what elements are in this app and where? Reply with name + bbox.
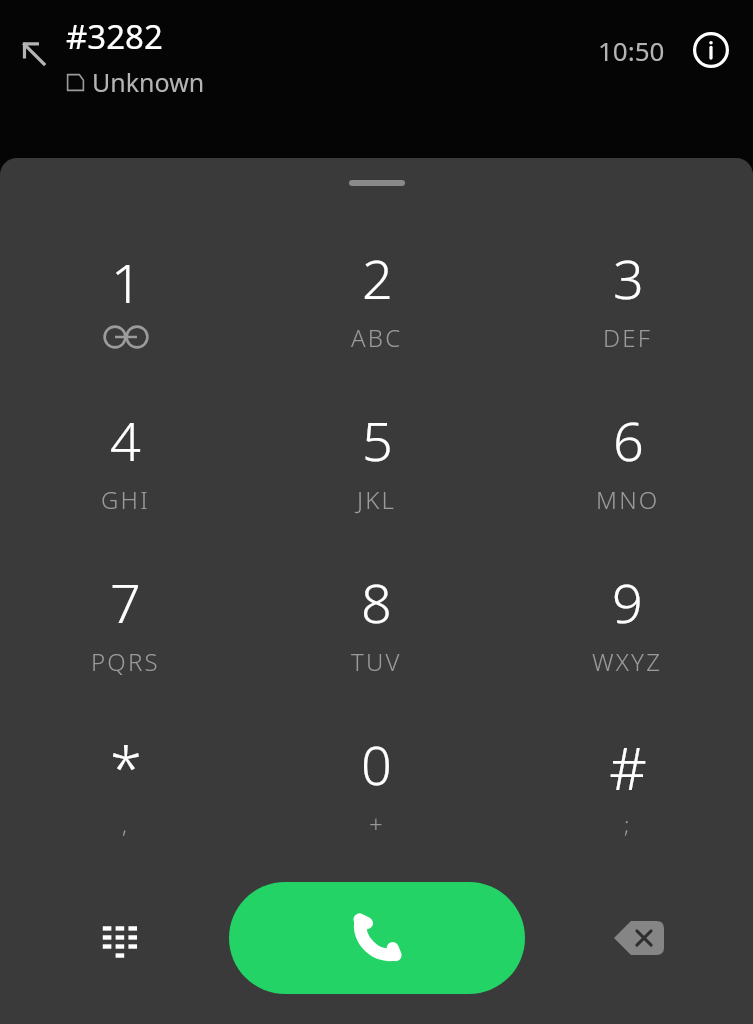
staticText: # <box>609 728 647 807</box>
staticText: JKL <box>357 483 397 516</box>
button[interactable]: Backspace <box>603 902 675 974</box>
button[interactable]: 3 <box>502 216 753 378</box>
button[interactable]: 6 <box>502 378 753 540</box>
staticText: DEF <box>603 321 653 354</box>
staticText: 6 <box>613 403 644 477</box>
button[interactable]: 8 <box>251 540 502 702</box>
staticText: 5 <box>362 403 393 477</box>
button[interactable]: Call details <box>689 28 733 72</box>
staticText: Unknown <box>92 65 205 99</box>
staticText: * <box>110 728 142 807</box>
button[interactable]: 2 <box>251 216 502 378</box>
staticText: , <box>122 809 130 839</box>
staticText: 4 <box>110 403 141 477</box>
staticText: TUV <box>351 645 402 678</box>
staticText: 1 <box>111 245 142 319</box>
button[interactable]: Outgoing call <box>10 30 58 78</box>
staticText: PQRS <box>91 645 160 678</box>
staticText: GHI <box>101 483 150 516</box>
staticText: ; <box>624 809 632 839</box>
button[interactable]: 4 <box>0 378 251 540</box>
button[interactable]: Call <box>229 882 525 994</box>
staticText: WXYZ <box>592 645 663 678</box>
staticText: MNO <box>596 483 660 516</box>
staticText: 9 <box>612 565 643 639</box>
staticText: 0 <box>361 727 392 801</box>
staticText: 10:50 <box>598 33 665 68</box>
button[interactable]: 5 <box>251 378 502 540</box>
staticText: #3282 <box>66 14 163 59</box>
staticText: 2 <box>362 241 393 315</box>
staticText: 7 <box>110 565 141 639</box>
staticText: ABC <box>351 321 403 354</box>
button[interactable]: 1 <box>0 216 251 378</box>
staticText: + <box>369 807 385 840</box>
button[interactable]: # <box>502 702 753 864</box>
button[interactable]: Hide dialpad <box>84 902 156 974</box>
button[interactable]: 7 <box>0 540 251 702</box>
button[interactable]: 0 <box>251 702 502 864</box>
staticText: 8 <box>361 565 392 639</box>
staticText: 3 <box>613 241 644 315</box>
button[interactable]: 9 <box>502 540 753 702</box>
button[interactable]: * <box>0 702 251 864</box>
